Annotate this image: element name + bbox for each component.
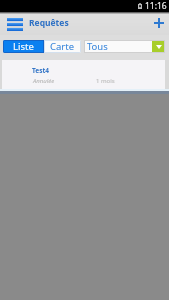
staticText: Annulée — [33, 77, 55, 85]
button[interactable]: Carte — [44, 40, 81, 53]
staticText: 11:16 — [145, 0, 167, 12]
button[interactable]: Liste — [3, 40, 44, 53]
button[interactable]: Menu — [7, 14, 23, 35]
staticText: Requêtes — [29, 17, 69, 29]
staticText: Carte — [50, 40, 75, 53]
button[interactable]: Tous — [84, 40, 165, 53]
staticText: Liste — [13, 40, 34, 53]
button[interactable]: Test4 — [2, 60, 165, 89]
staticText: Test4 — [32, 66, 49, 75]
staticText: Tous — [87, 40, 108, 53]
staticText: 1 mois — [96, 77, 115, 85]
button[interactable]: Add — [148, 12, 169, 33]
